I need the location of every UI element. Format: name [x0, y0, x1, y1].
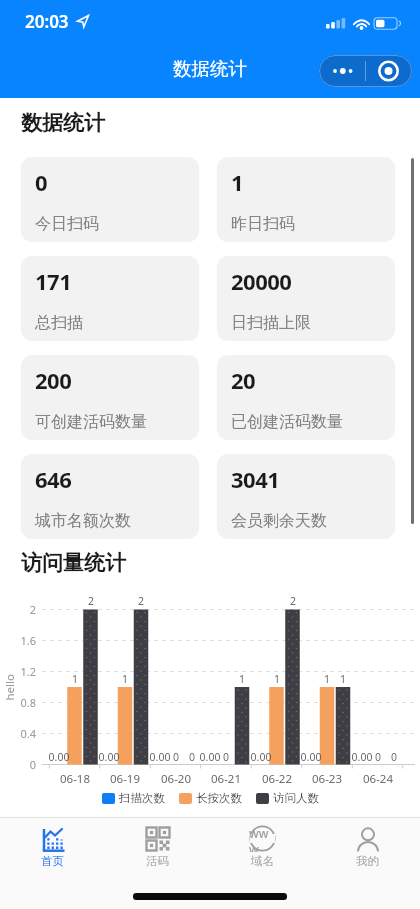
button[interactable]	[319, 55, 412, 87]
button[interactable]: 首页	[0, 825, 105, 868]
staticText: 1	[105, 672, 145, 686]
button[interactable]: 活码	[105, 825, 210, 868]
staticText: 访问人数	[273, 791, 319, 805]
staticText: 0	[206, 750, 246, 764]
staticText: 1	[222, 672, 262, 686]
staticText: 0.00	[342, 750, 382, 764]
staticText: 0.4	[6, 726, 36, 741]
staticText: 20	[231, 365, 256, 395]
button[interactable]: 1	[217, 157, 395, 242]
staticText: 0.00	[190, 750, 230, 764]
staticText: 0	[156, 750, 196, 764]
staticText: 城市名额次数	[35, 511, 131, 531]
staticText: 0	[172, 750, 212, 764]
staticText: 活码	[146, 854, 169, 868]
staticText: 0.00	[291, 750, 331, 764]
staticText: 扫描次数	[119, 791, 165, 805]
staticText: 1.6	[6, 633, 36, 648]
button[interactable]: 3041	[217, 454, 395, 539]
staticText: 昨日扫码	[231, 214, 295, 234]
staticText: 06-20	[156, 771, 196, 787]
staticText: 域名	[251, 854, 274, 868]
staticText: 20:03	[25, 10, 69, 33]
staticText: 会员剩余天数	[231, 511, 327, 531]
button[interactable]: 171	[21, 256, 199, 341]
staticText: 日扫描上限	[231, 313, 311, 333]
staticText: 1	[323, 672, 363, 686]
button[interactable]: 我的	[315, 825, 420, 868]
staticText: 2	[273, 594, 313, 608]
staticText: 0.00	[241, 750, 281, 764]
staticText: 1.2	[6, 664, 36, 679]
staticText: 06-19	[105, 771, 145, 787]
staticText: 06-23	[307, 771, 347, 787]
staticText: 06-22	[257, 771, 297, 787]
staticText: www	[249, 825, 276, 852]
button[interactable]: www	[210, 825, 315, 868]
staticText: 06-21	[206, 771, 246, 787]
staticText: 今日扫码	[35, 214, 99, 234]
button[interactable]: 访问人数	[256, 791, 319, 805]
staticText: 2	[71, 594, 111, 608]
staticText: 1	[231, 167, 244, 197]
staticText: 0	[358, 750, 398, 764]
staticText: hello	[1, 673, 17, 700]
staticText: 数据统计	[21, 110, 105, 136]
staticText: 3041	[231, 464, 280, 494]
staticText: 访问量统计	[21, 550, 126, 576]
staticText: 数据统计	[173, 57, 247, 80]
staticText: 06-24	[358, 771, 398, 787]
button[interactable]: 20	[217, 355, 395, 440]
staticText: 171	[35, 266, 72, 296]
button[interactable]: 0	[21, 157, 199, 242]
button[interactable]: 扫描次数	[102, 791, 165, 805]
staticText: 1	[55, 672, 95, 686]
staticText: 我的	[356, 854, 379, 868]
staticText: 0.00	[39, 750, 79, 764]
staticText: 0	[374, 750, 414, 764]
staticText: 1	[307, 672, 347, 686]
button[interactable]: 646	[21, 454, 199, 539]
staticText: 总扫描	[35, 313, 83, 333]
staticText: 2	[121, 594, 161, 608]
staticText: 0.8	[6, 695, 36, 710]
button[interactable]: 20000	[217, 256, 395, 341]
staticText: 2	[6, 602, 36, 617]
staticText: 0.00	[89, 750, 129, 764]
staticText: 可创建活码数量	[35, 412, 147, 432]
staticText: 0	[35, 167, 48, 197]
staticText: 06-18	[55, 771, 95, 787]
staticText: 646	[35, 464, 72, 494]
staticText: 首页	[41, 854, 64, 868]
button[interactable]: 200	[21, 355, 199, 440]
button[interactable]: 长按次数	[179, 791, 242, 805]
staticText: 已创建活码数量	[231, 412, 343, 432]
staticText: 长按次数	[196, 791, 242, 805]
staticText: 20000	[231, 266, 292, 296]
staticText: 0.00	[140, 750, 180, 764]
staticText: 1	[257, 672, 297, 686]
staticText: 0	[6, 757, 36, 772]
staticText: 200	[35, 365, 72, 395]
